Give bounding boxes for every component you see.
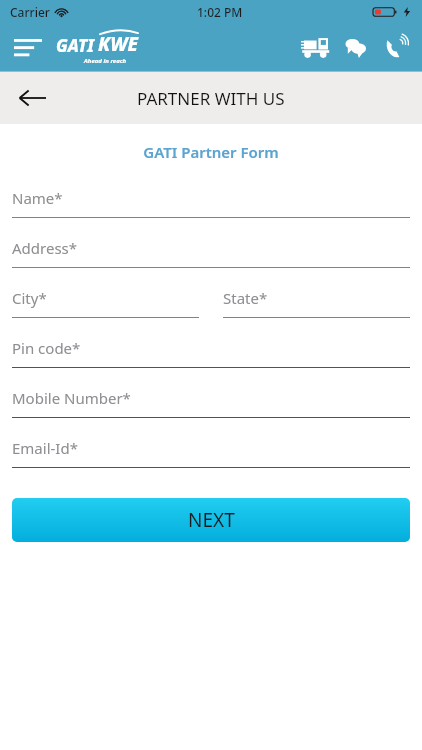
staticText: Ahead in reach bbox=[84, 57, 127, 65]
button[interactable]: State* bbox=[223, 288, 410, 318]
button[interactable]: Mobile Number* bbox=[12, 388, 410, 418]
staticText: 1:02 PM bbox=[197, 4, 243, 20]
staticText: City* bbox=[12, 288, 47, 308]
button[interactable]: Name* bbox=[12, 188, 410, 218]
button[interactable]: NEXT bbox=[12, 498, 410, 542]
staticText: NEXT bbox=[188, 507, 235, 533]
staticText: Name* bbox=[12, 188, 63, 208]
button[interactable]: Back bbox=[10, 76, 54, 120]
staticText: GATI bbox=[56, 34, 95, 57]
button[interactable]: Chat bbox=[336, 28, 376, 68]
button[interactable]: Email-Id* bbox=[12, 438, 410, 468]
staticText: Address* bbox=[12, 238, 78, 258]
staticText: KWE bbox=[98, 31, 138, 57]
button[interactable]: Pin code* bbox=[12, 338, 410, 368]
staticText: Pin code* bbox=[12, 338, 81, 358]
button[interactable]: Call bbox=[376, 28, 416, 68]
button[interactable]: Menu bbox=[8, 28, 48, 68]
button[interactable]: City* bbox=[12, 288, 199, 318]
staticText: State* bbox=[223, 288, 268, 308]
staticText: Email-Id* bbox=[12, 438, 78, 458]
button[interactable]: Address* bbox=[12, 238, 410, 268]
staticText: Carrier bbox=[10, 4, 50, 20]
button[interactable]: Track shipment bbox=[296, 28, 336, 68]
staticText: Mobile Number* bbox=[12, 388, 131, 408]
staticText: PARTNER WITH US bbox=[137, 87, 285, 110]
staticText: GATI Partner Form bbox=[0, 142, 422, 162]
